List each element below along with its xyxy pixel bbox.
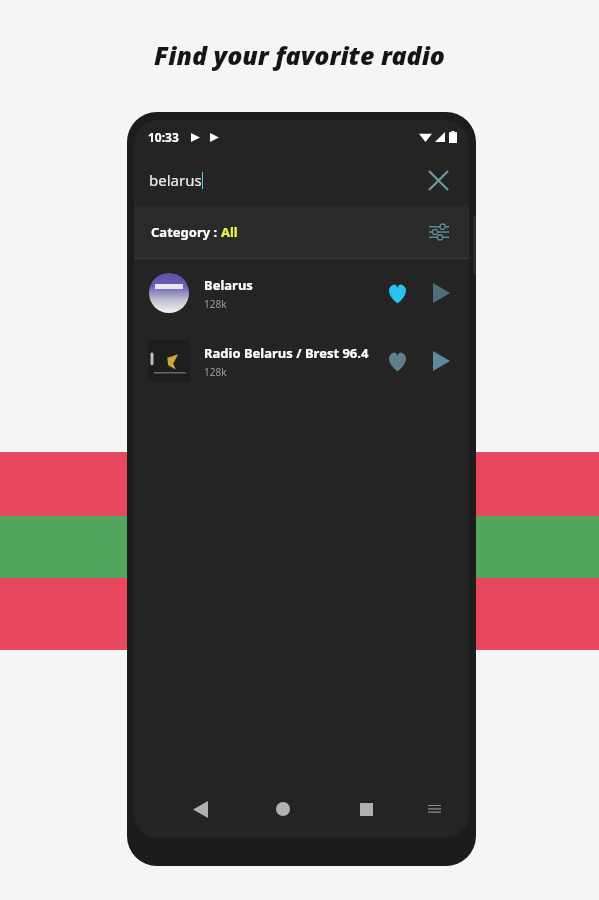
button[interactable]: Play xyxy=(421,273,461,313)
staticText: 128k xyxy=(204,365,227,379)
staticText: Category : xyxy=(151,223,221,241)
staticText: 128k xyxy=(204,297,227,311)
staticText: All xyxy=(221,223,238,241)
button[interactable]: Back xyxy=(178,787,222,831)
staticText: Belarus xyxy=(204,276,253,294)
staticText: 10:33 xyxy=(148,129,179,145)
button[interactable]: Radio Belarus / Brest 96.4 xyxy=(134,327,469,395)
staticText: Find your favorite radio xyxy=(154,38,445,72)
button[interactable]: Recent apps xyxy=(344,787,388,831)
button[interactable]: Favorite xyxy=(377,341,417,381)
button[interactable]: Play xyxy=(421,341,461,381)
button[interactable]: Home xyxy=(261,787,305,831)
staticText: Radio Belarus / Brest 96.4 xyxy=(204,344,369,362)
button[interactable]: Filter settings xyxy=(423,216,455,248)
button[interactable]: Keyboard xyxy=(417,792,451,826)
staticText: belarus xyxy=(149,170,202,190)
button[interactable]: Category : xyxy=(134,206,469,258)
button[interactable]: Favorite xyxy=(377,273,417,313)
button[interactable]: Clear search xyxy=(421,163,455,197)
button[interactable]: belarus xyxy=(134,154,469,206)
button[interactable]: Belarus xyxy=(134,259,469,327)
